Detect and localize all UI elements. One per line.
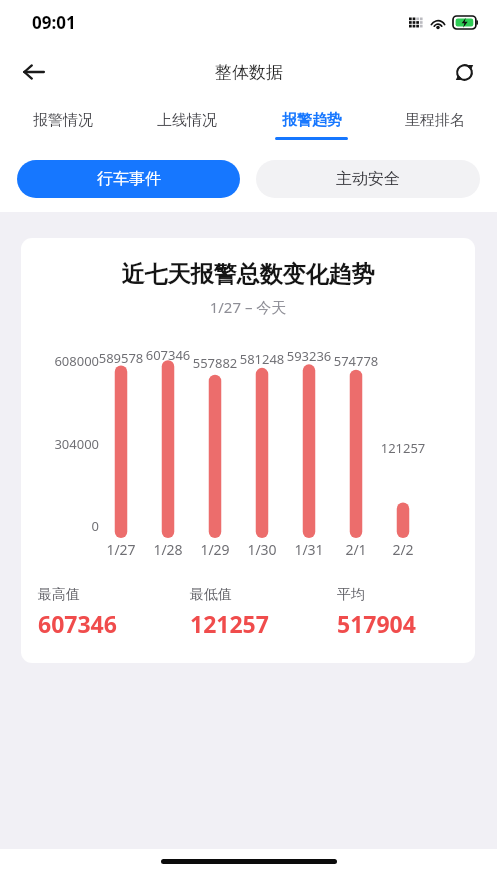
button[interactable]: 上线情况: [125, 100, 249, 150]
staticText: 上线情况: [157, 111, 217, 130]
staticText: 607346: [38, 608, 117, 639]
staticText: 0: [21, 517, 99, 535]
staticText: 607346: [139, 346, 197, 364]
button[interactable]: 报警情况: [0, 100, 125, 150]
staticText: 近七天报警总数变化趋势: [21, 260, 475, 289]
staticText: 2/2: [379, 540, 427, 559]
staticText: 2/1: [332, 540, 380, 559]
staticText: 608000: [21, 352, 99, 370]
button[interactable]: 里程排名: [373, 100, 497, 150]
staticText: 行车事件: [97, 169, 161, 189]
button[interactable]: 行车事件: [17, 160, 240, 198]
staticText: 主动安全: [336, 169, 400, 189]
staticText: 304000: [21, 435, 99, 453]
staticText: 1/27: [97, 540, 145, 559]
staticText: 517904: [337, 608, 416, 639]
staticText: 557882: [186, 354, 244, 372]
staticText: 报警趋势: [282, 111, 342, 130]
staticText: 589578: [92, 349, 150, 367]
staticText: 1/27 – 今天: [21, 297, 475, 317]
staticText: 09:01: [32, 11, 76, 34]
staticText: 最高值: [38, 586, 80, 604]
staticText: 581248: [233, 350, 291, 368]
button[interactable]: Refresh: [441, 49, 487, 95]
staticText: 整体数据: [215, 62, 283, 83]
staticText: 593236: [280, 347, 338, 365]
staticText: 1/28: [144, 540, 192, 559]
button[interactable]: 主动安全: [256, 160, 480, 198]
staticText: 121257: [374, 439, 432, 457]
staticText: 最低值: [190, 586, 232, 604]
staticText: 报警情况: [33, 111, 93, 130]
staticText: 1/30: [238, 540, 286, 559]
staticText: 121257: [190, 608, 269, 639]
button[interactable]: Back: [10, 48, 58, 96]
staticText: 1/31: [285, 540, 333, 559]
staticText: 平均: [337, 586, 365, 604]
button[interactable]: 报警趋势: [249, 100, 373, 150]
staticText: 574778: [327, 352, 385, 370]
staticText: 1/29: [191, 540, 239, 559]
staticText: 里程排名: [405, 111, 465, 130]
